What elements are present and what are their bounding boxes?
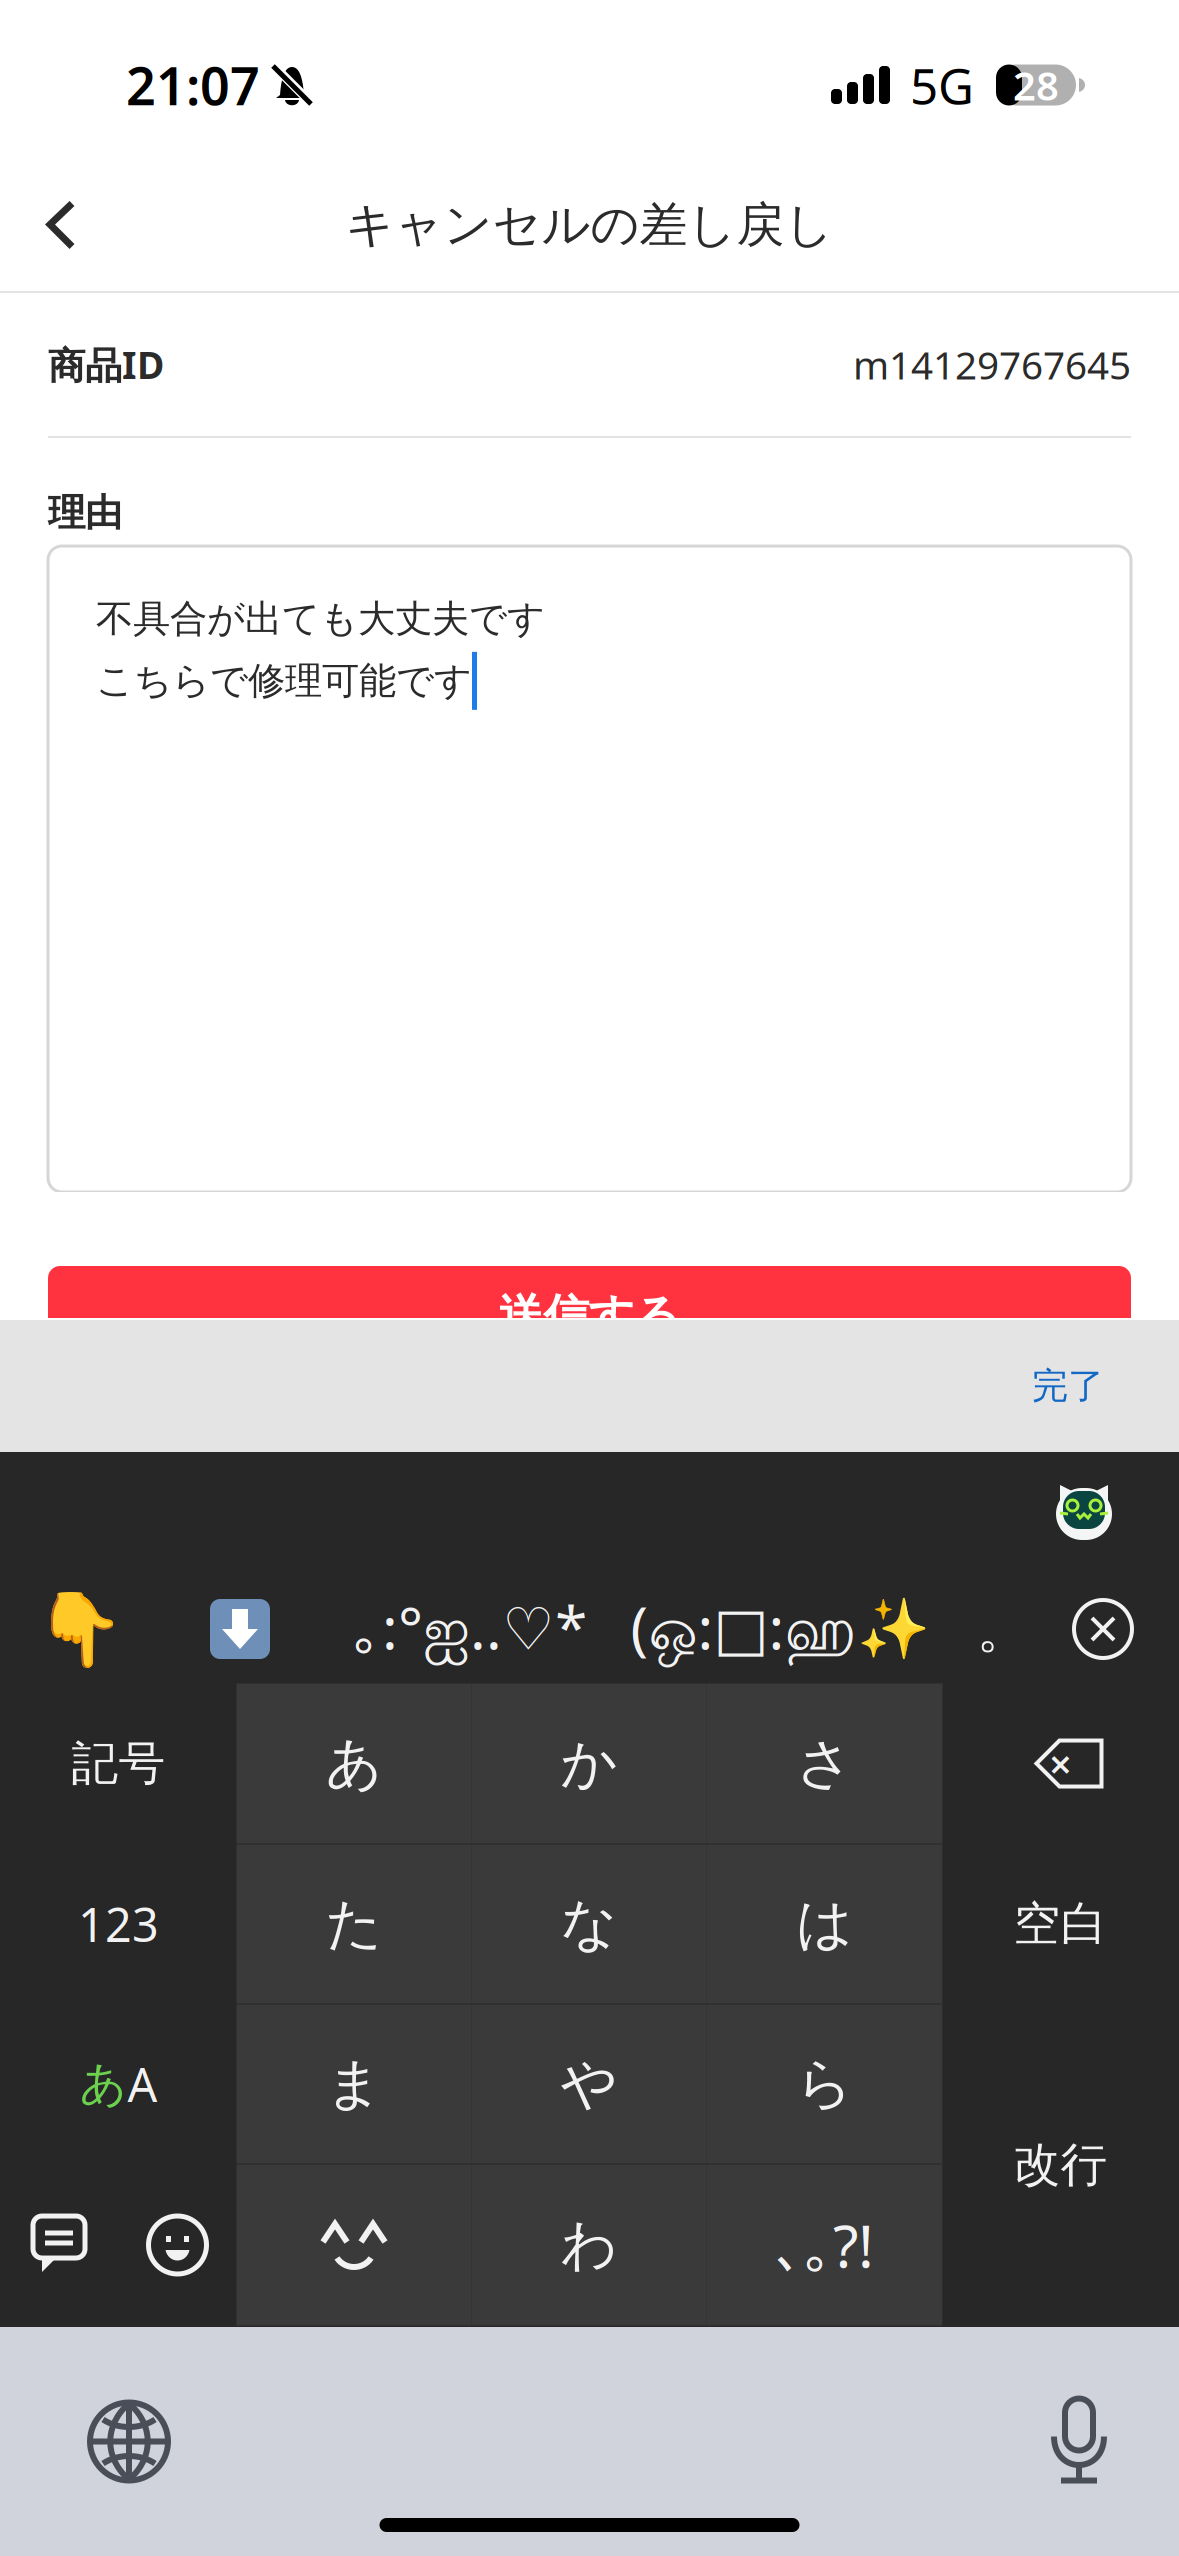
staticText: こちらで修理可能です bbox=[96, 658, 472, 704]
button[interactable]: 変換 bbox=[0, 2164, 117, 2325]
staticText: 完了 bbox=[1032, 1364, 1104, 1408]
button[interactable]: 削除 bbox=[942, 1683, 1178, 1843]
button[interactable]: か bbox=[471, 1683, 706, 1843]
staticText: 改行 bbox=[1013, 2136, 1107, 2194]
button[interactable]: 絵文字 bbox=[118, 2164, 236, 2325]
button[interactable]: 記号 bbox=[0, 1683, 236, 1843]
staticText: 不具合が出ても大丈夫です bbox=[96, 596, 545, 642]
button[interactable]: ら bbox=[706, 2004, 942, 2163]
button[interactable]: 送信する bbox=[48, 1266, 1131, 1318]
button[interactable]: わ bbox=[471, 2164, 706, 2325]
button[interactable]: (ஒ:□:ஹ✨ bbox=[620, 1576, 940, 1682]
button[interactable]: は bbox=[706, 1844, 942, 2003]
button[interactable]: 音声入力 bbox=[1051, 2398, 1179, 2484]
staticText: 空白 bbox=[1013, 1895, 1107, 1953]
button[interactable]: 顔文字 bbox=[236, 2164, 471, 2325]
button[interactable]: ､｡?! bbox=[706, 2164, 942, 2325]
staticText: 👇 bbox=[35, 1588, 125, 1670]
staticText: わ bbox=[560, 2211, 617, 2279]
staticText: ま bbox=[325, 2050, 382, 2118]
button[interactable]: や bbox=[471, 2004, 706, 2163]
button[interactable]: 候補 1 bbox=[0, 1576, 160, 1682]
button[interactable]: 次のキーボード bbox=[0, 2402, 168, 2480]
staticText: た bbox=[325, 1890, 382, 1958]
staticText: × bbox=[1049, 1737, 1072, 1790]
staticText: A bbox=[127, 2053, 157, 2115]
button[interactable]: た bbox=[236, 1844, 471, 2003]
button[interactable]: 候補を消去 bbox=[1043, 1576, 1163, 1682]
staticText: さ bbox=[796, 1729, 853, 1798]
button[interactable]: 空白 bbox=[942, 1844, 1178, 2003]
button[interactable]: ｡:°ஐ..♡* bbox=[320, 1576, 620, 1682]
staticText: か bbox=[560, 1729, 617, 1798]
staticText: 123 bbox=[78, 1893, 159, 1955]
staticText: 記号 bbox=[71, 1735, 165, 1792]
staticText: キャンセルの差し戻し bbox=[345, 195, 833, 254]
button[interactable]: あ bbox=[236, 1683, 471, 1843]
button[interactable]: 戻る bbox=[0, 170, 122, 280]
staticText: 5G bbox=[910, 52, 974, 118]
staticText: 21:07 bbox=[126, 50, 260, 120]
staticText: は bbox=[796, 1890, 853, 1958]
staticText: ､｡?! bbox=[775, 2206, 874, 2284]
staticText: ら bbox=[796, 2050, 853, 2118]
staticText: な bbox=[560, 1890, 617, 1958]
staticText: m14129767645 bbox=[853, 339, 1131, 390]
button[interactable]: あ bbox=[0, 2004, 236, 2163]
staticText: 商品ID bbox=[48, 340, 164, 389]
button[interactable]: ま bbox=[236, 2004, 471, 2163]
button[interactable]: 完了 bbox=[1032, 1364, 1179, 1408]
staticText: や bbox=[560, 2050, 617, 2118]
staticText: ｡:°ஐ..♡* bbox=[353, 1588, 587, 1670]
button[interactable]: 改行 bbox=[942, 2004, 1178, 2325]
staticText: 28 bbox=[1013, 58, 1059, 111]
button[interactable]: 候補 2 bbox=[160, 1576, 320, 1682]
staticText: あ bbox=[79, 2055, 127, 2113]
staticText: 理由 bbox=[48, 490, 122, 536]
button[interactable]: 。 bbox=[963, 1576, 1043, 1682]
staticText: 。 bbox=[976, 1596, 1029, 1662]
staticText: (ஒ:□:ஹ✨ bbox=[630, 1588, 929, 1670]
button[interactable]: 123 bbox=[0, 1844, 236, 2003]
staticText: 送信する bbox=[498, 1288, 680, 1344]
button[interactable]: さ bbox=[706, 1683, 942, 1843]
button[interactable]: な bbox=[471, 1844, 706, 2003]
staticText: あ bbox=[325, 1729, 382, 1798]
